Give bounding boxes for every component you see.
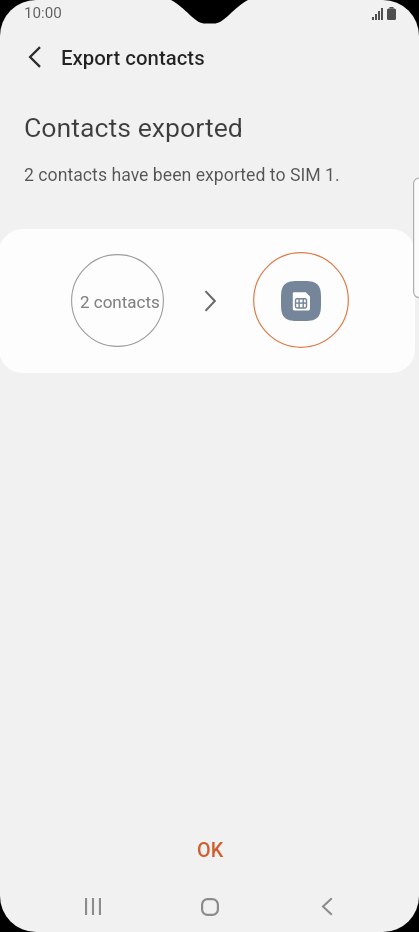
staticText: Contacts exported [24,112,243,143]
button[interactable]: Recent apps [62,884,123,929]
button[interactable]: OK [1,829,419,871]
button[interactable]: 2 contacts [0,229,415,373]
staticText: OK [197,839,224,862]
button[interactable]: Home [179,884,240,929]
staticText: Export contacts [61,46,205,70]
staticText: 2 contacts [80,292,160,312]
staticText: 2 contacts have been exported to SIM 1. [24,165,340,186]
button[interactable]: Back [11,34,57,80]
button[interactable]: Back [296,884,357,929]
staticText: 10:00 [24,4,62,22]
